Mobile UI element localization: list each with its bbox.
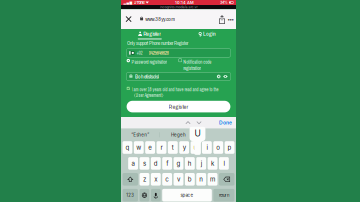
button[interactable]: q <box>122 141 132 154</box>
staticText: b <box>188 176 192 183</box>
staticText: c <box>165 176 169 183</box>
button[interactable]: n <box>196 173 206 186</box>
staticText: Hegeh <box>171 132 186 138</box>
button[interactable]: More <box>226 9 235 29</box>
button[interactable]: x <box>151 173 161 186</box>
button[interactable]: Notification code registration <box>178 59 230 71</box>
button[interactable]: Hegeh <box>160 128 197 141</box>
staticText: o <box>216 144 220 151</box>
button[interactable]: y <box>179 141 189 154</box>
staticText: 123 <box>126 193 134 198</box>
staticText: ▂▄▆ <box>123 0 132 4</box>
button[interactable]: r <box>157 141 166 154</box>
staticText: U <box>194 128 200 138</box>
button[interactable]: t <box>168 141 178 154</box>
staticText: j <box>201 160 202 167</box>
button[interactable]: Shift <box>122 173 138 186</box>
button[interactable]: w <box>134 141 144 154</box>
staticText: +92 <box>137 50 143 56</box>
button[interactable]: Login <box>178 30 236 39</box>
button[interactable]: Share <box>217 9 227 29</box>
staticText: Register <box>143 30 161 37</box>
staticText: Done <box>219 120 232 126</box>
button[interactable]: o <box>213 141 223 154</box>
staticText: Only support Phone number Register <box>127 40 188 46</box>
button[interactable]: Register <box>121 30 178 39</box>
staticText: Password registration <box>131 59 167 65</box>
staticText: k <box>211 160 214 167</box>
button[interactable]: m <box>208 173 217 186</box>
staticText: i <box>206 144 207 151</box>
button[interactable]: v <box>174 173 183 186</box>
staticText: Register <box>168 102 188 111</box>
staticText: g <box>176 160 180 167</box>
staticText: a <box>132 160 135 167</box>
staticText: www.38yy.com <box>145 15 175 23</box>
staticText: space <box>180 192 193 198</box>
button[interactable]: Delete <box>219 173 234 186</box>
button[interactable]: b <box>185 173 195 186</box>
staticText: x <box>154 176 157 183</box>
staticText: n <box>199 176 203 183</box>
staticText: Bohetistsclsl <box>135 73 159 80</box>
button[interactable]: Next field <box>191 117 202 128</box>
button[interactable]: Previous field <box>185 117 191 128</box>
staticText: v <box>177 176 180 183</box>
staticText: incognito.mode/a.src.vr <box>159 5 197 9</box>
button[interactable]: g <box>174 157 183 170</box>
button[interactable]: return <box>213 189 234 201</box>
button[interactable]: Register <box>127 101 230 112</box>
staticText: p <box>228 144 232 151</box>
button[interactable]: Password registration <box>127 59 178 65</box>
button[interactable]: h <box>185 157 195 170</box>
button[interactable]: Clear password <box>217 74 221 78</box>
staticText: r <box>160 144 162 151</box>
staticText: y <box>183 144 186 151</box>
staticText: t <box>172 144 174 151</box>
button[interactable]: Done <box>219 120 232 126</box>
staticText: d <box>154 160 158 167</box>
staticText: ••• <box>227 16 233 22</box>
staticText: 34% <box>220 0 228 5</box>
button[interactable]: u <box>191 141 200 154</box>
staticText: return <box>219 193 229 198</box>
button[interactable]: Switch keyboard <box>139 189 149 201</box>
staticText: e <box>148 144 152 151</box>
button[interactable]: space <box>162 189 212 201</box>
button[interactable]: z <box>139 173 149 186</box>
button[interactable]: f <box>162 157 172 170</box>
staticText: UTone <box>133 0 144 5</box>
button[interactable]: a <box>128 157 138 170</box>
staticText: w <box>136 144 141 151</box>
button[interactable]: “Eshen” <box>121 128 159 141</box>
staticText: 10:14 AM <box>175 0 194 5</box>
staticText: Notification code registration <box>183 59 211 71</box>
button[interactable]: Close tab <box>123 9 135 29</box>
staticText: Login <box>203 30 216 37</box>
button[interactable]: Show password <box>221 74 228 78</box>
staticText: f <box>166 160 168 167</box>
button[interactable]: s <box>139 157 149 170</box>
staticText: m <box>210 176 215 183</box>
button[interactable]: p <box>225 141 234 154</box>
staticText: h <box>188 160 192 167</box>
button[interactable]: e <box>145 141 155 154</box>
staticText: u <box>193 144 197 151</box>
staticText: I am over 18 years old and have read and… <box>132 87 219 98</box>
button[interactable]: Dictate <box>151 189 161 201</box>
button[interactable]: k <box>208 157 217 170</box>
button[interactable]: I am over 18 years old and have read and… <box>127 87 230 98</box>
staticText: z <box>143 176 146 183</box>
button[interactable]: j <box>196 157 206 170</box>
button[interactable]: 123 <box>122 189 138 201</box>
staticText: “Eshen” <box>131 132 149 138</box>
staticText: 0425646628 <box>149 49 169 56</box>
staticText: l <box>223 160 224 167</box>
staticText: q <box>125 144 129 151</box>
staticText: s <box>143 160 146 167</box>
button[interactable]: d <box>151 157 161 170</box>
button[interactable]: c <box>162 173 172 186</box>
button[interactable]: i <box>202 141 212 154</box>
button[interactable]: l <box>219 157 229 170</box>
